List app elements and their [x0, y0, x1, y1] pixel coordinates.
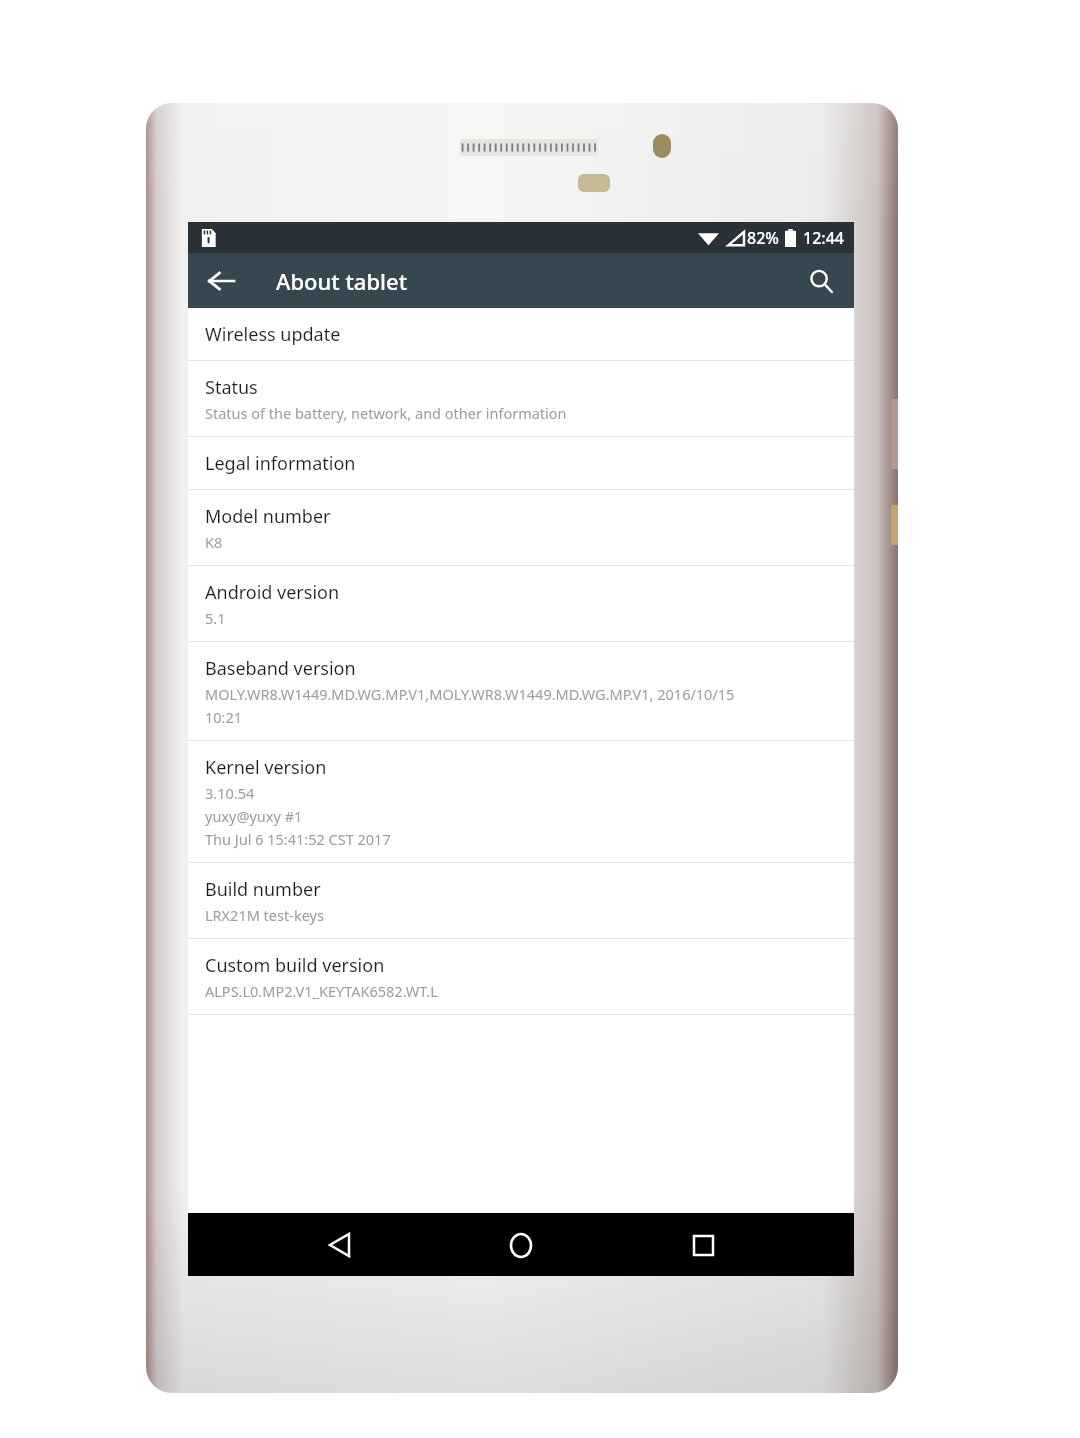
- button[interactable]: Baseband version: [188, 642, 854, 741]
- staticText: 5.1: [205, 608, 226, 628]
- button[interactable]: Recent apps: [673, 1215, 733, 1275]
- staticText: Legal information: [205, 451, 356, 476]
- staticText: Model number: [205, 504, 331, 529]
- staticText: Wireless update: [205, 322, 341, 347]
- staticText: LRX21M test-keys: [205, 905, 324, 925]
- staticText: Thu Jul 6 15:41:52 CST 2017: [205, 829, 391, 849]
- staticText: yuxy@yuxy #1: [205, 806, 303, 826]
- staticText: Kernel version: [205, 755, 327, 780]
- button[interactable]: Wireless update: [188, 308, 854, 361]
- button[interactable]: Search: [794, 254, 848, 308]
- staticText: About tablet: [276, 266, 408, 296]
- staticText: ALPS.L0.MP2.V1_KEYTAK6582.WT.L: [205, 981, 438, 1001]
- staticText: Status of the battery, network, and othe…: [205, 403, 567, 423]
- button[interactable]: Custom build version: [188, 939, 854, 1015]
- staticText: 10:21: [205, 707, 243, 727]
- staticText: Android version: [205, 580, 340, 605]
- staticText: 3.10.54: [205, 783, 255, 803]
- button[interactable]: Home: [491, 1215, 551, 1275]
- staticText: Custom build version: [205, 953, 385, 978]
- staticText: Build number: [205, 877, 321, 902]
- button[interactable]: Status: [188, 361, 854, 437]
- button[interactable]: Back: [310, 1215, 370, 1275]
- button[interactable]: Build number: [188, 863, 854, 939]
- button[interactable]: Kernel version: [188, 741, 854, 863]
- button[interactable]: Legal information: [188, 437, 854, 490]
- staticText: K8: [205, 532, 223, 552]
- button[interactable]: Model number: [188, 490, 854, 566]
- button[interactable]: Back: [194, 254, 248, 308]
- staticText: Status: [205, 375, 258, 400]
- staticText: 12:44: [803, 227, 844, 249]
- staticText: MOLY.WR8.W1449.MD.WG.MP.V1,MOLY.WR8.W144…: [205, 684, 735, 704]
- staticText: Baseband version: [205, 656, 356, 681]
- staticText: 82%: [747, 227, 779, 249]
- button[interactable]: Android version: [188, 566, 854, 642]
